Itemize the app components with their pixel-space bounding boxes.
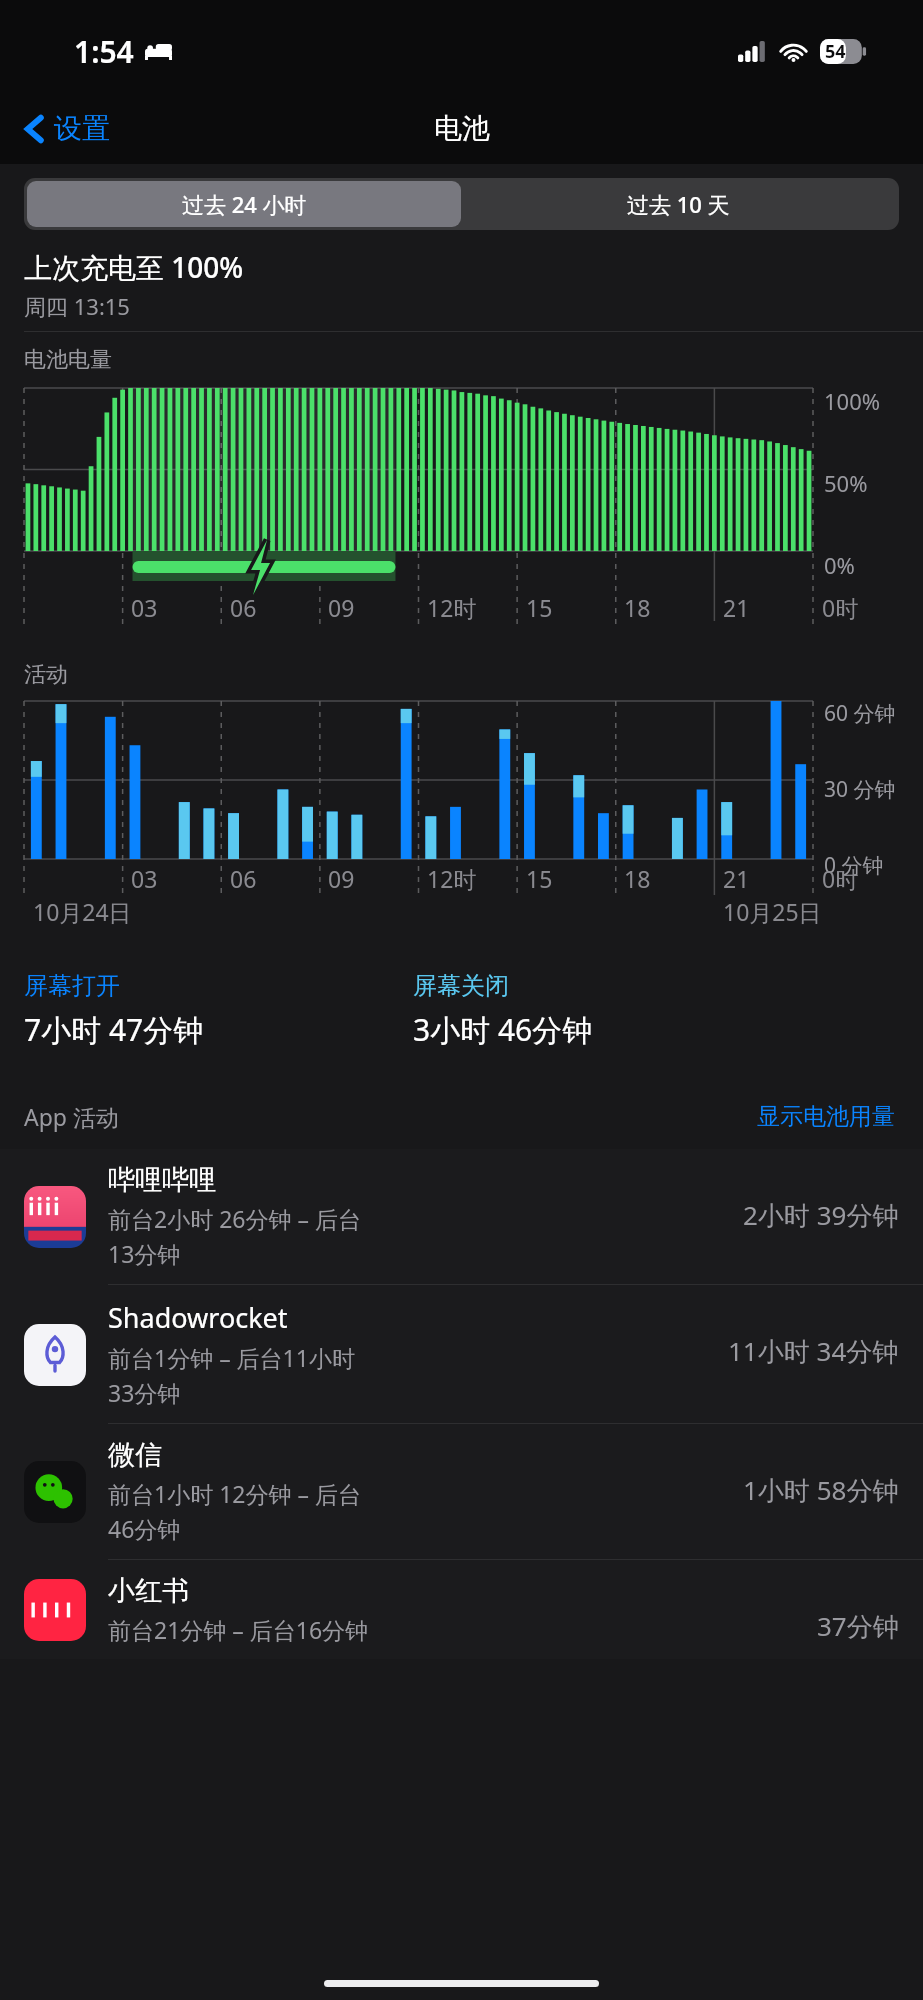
staticText: 50% (824, 468, 868, 498)
staticText: 54 (825, 39, 846, 64)
staticText: 60 分钟 (824, 699, 896, 728)
button[interactable]: 过去 24 小时 (27, 181, 461, 227)
staticText: 电池 (434, 111, 490, 146)
button[interactable]: 显示电池用量 (753, 1098, 899, 1135)
staticText: 0时 (822, 863, 859, 894)
staticText: 15 (526, 863, 553, 894)
staticText: 100% (824, 386, 881, 416)
staticText: 前台1分钟 – 后台11小时 33分钟 (108, 1342, 355, 1409)
staticText: 18 (624, 863, 651, 894)
staticText: 09 (328, 863, 355, 894)
staticText: 2小时 39分钟 (743, 1197, 899, 1233)
button[interactable]: App icon (0, 1285, 923, 1424)
staticText: 小红书 (108, 1574, 189, 1608)
button[interactable]: App icon (0, 1149, 923, 1285)
staticText: 电池电量 (24, 346, 112, 374)
staticText: 微信 (108, 1438, 162, 1472)
staticText: 7小时 47分钟 (24, 1009, 204, 1050)
staticText: 03 (131, 863, 158, 894)
staticText: 前台2小时 26分钟 – 后台 13分钟 (108, 1203, 361, 1270)
button[interactable]: App icon (0, 1560, 923, 1659)
staticText: 前台21分钟 – 后台16分钟 (108, 1614, 369, 1645)
other: App icon (24, 1186, 86, 1248)
staticText: 37分钟 (817, 1608, 899, 1644)
staticText: 12时 (427, 592, 477, 623)
staticText: 前台1小时 12分钟 – 后台 46分钟 (108, 1478, 361, 1545)
staticText: 21 (723, 863, 750, 894)
staticText: 1:54 (74, 31, 134, 72)
staticText: 上次充电至 100% (24, 248, 244, 286)
staticText: 30 分钟 (824, 775, 896, 804)
staticText: 15 (526, 592, 553, 623)
staticText: 10月24日 (33, 896, 132, 927)
staticText: 09 (328, 592, 355, 623)
staticText: 哔哩哔哩 (108, 1163, 216, 1197)
button[interactable]: App icon (0, 1424, 923, 1560)
staticText: 3小时 46分钟 (413, 1009, 593, 1050)
staticText: 03 (131, 592, 158, 623)
staticText: 11小时 34分钟 (728, 1333, 899, 1369)
button[interactable]: 设置 (20, 105, 114, 152)
staticText: 过去 10 天 (627, 189, 730, 219)
button[interactable]: 过去 10 天 (461, 181, 896, 227)
staticText: 显示电池用量 (757, 1102, 895, 1131)
staticText: 屏幕打开 (24, 971, 120, 1001)
staticText: 10月25日 (723, 896, 822, 927)
staticText: 1小时 58分钟 (743, 1472, 899, 1508)
other: App icon (24, 1461, 86, 1523)
staticText: 18 (624, 592, 651, 623)
staticText: App 活动 (24, 1101, 119, 1132)
staticText: 21 (723, 592, 750, 623)
other: App icon (24, 1324, 86, 1386)
staticText: 12时 (427, 863, 477, 894)
staticText: 活动 (24, 661, 68, 689)
other: App icon (24, 1579, 86, 1641)
staticText: 0时 (822, 592, 859, 623)
staticText: 设置 (54, 111, 110, 146)
staticText: 0% (824, 550, 855, 580)
staticText: 06 (230, 863, 257, 894)
staticText: Shadowrocket (108, 1299, 288, 1336)
staticText: 06 (230, 592, 257, 623)
staticText: 周四 13:15 (24, 291, 130, 321)
staticText: 屏幕关闭 (413, 971, 509, 1001)
staticText: 0 分钟 (824, 851, 884, 880)
staticText: 过去 24 小时 (182, 189, 307, 219)
